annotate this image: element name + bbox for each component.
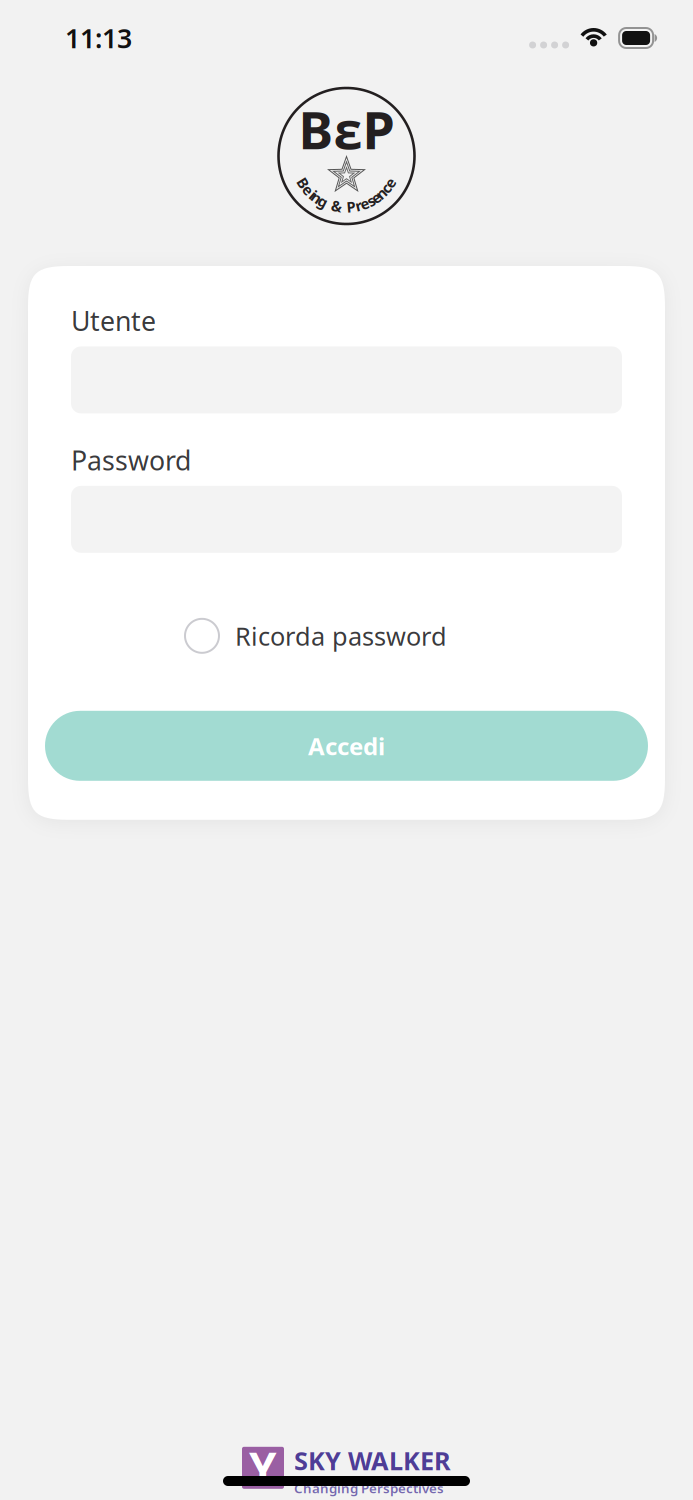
staticText: n [341,197,351,217]
staticText: B [341,197,351,217]
staticText: e [342,197,351,217]
staticText: BɛP [298,94,394,164]
staticText: n [341,197,351,217]
button[interactable]: Ricorda password [185,619,622,653]
staticText: c [342,197,350,217]
staticText: Ricorda password [235,619,447,653]
staticText: s [343,197,350,217]
staticText: Accedi [308,730,385,762]
staticText: e [342,197,351,217]
staticText: Y [249,1439,277,1497]
staticText: Changing Perspectives [294,1479,444,1497]
staticText: g [342,197,351,217]
staticText: e [342,197,351,217]
staticText: SKY WALKER [294,1444,451,1477]
staticText: Utente [71,303,156,338]
staticText: 11:13 [65,20,132,56]
staticText: i [344,197,348,217]
staticText: P [342,197,351,217]
staticText: Password [71,442,191,478]
button[interactable]: Accedi [45,711,648,781]
staticText: e [342,197,351,217]
staticText: & [341,197,352,217]
staticText: r [343,197,350,217]
